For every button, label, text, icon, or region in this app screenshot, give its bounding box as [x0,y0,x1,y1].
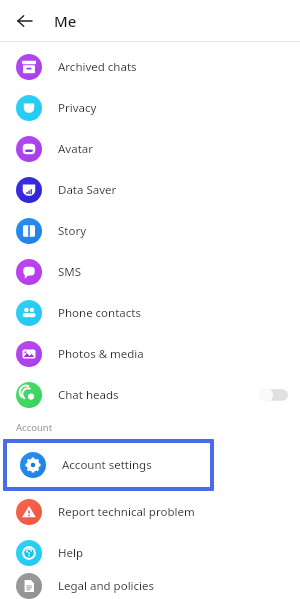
staticText: Help [58,545,84,561]
button[interactable]: Back [12,8,38,34]
button[interactable]: Legal and policies [0,573,300,599]
staticText: Chat heads [58,387,119,403]
staticText: Photos & media [58,346,144,362]
button[interactable]: SMS [0,251,300,292]
staticText: Account settings [62,457,152,473]
button[interactable]: Phone contacts [0,292,300,333]
staticText: Avatar [58,141,93,157]
button[interactable]: Toggle Chat heads [258,387,288,403]
button[interactable]: Avatar [0,128,300,169]
button[interactable]: Privacy [0,87,300,128]
button[interactable]: Story [0,210,300,251]
staticText: SMS [58,264,82,280]
staticText: Account [16,421,53,434]
button[interactable]: Account settings [7,443,210,487]
staticText: Data Saver [58,182,117,198]
button[interactable]: Data Saver [0,169,300,210]
staticText: Story [58,223,87,239]
staticText: Archived chats [58,59,137,75]
staticText: Phone contacts [58,305,141,321]
button[interactable]: Report technical problem [0,491,300,532]
button[interactable]: Help [0,532,300,573]
staticText: Report technical problem [58,504,195,520]
staticText: Privacy [58,100,97,116]
button[interactable]: Archived chats [0,46,300,87]
staticText: Legal and policies [58,578,155,594]
button[interactable]: Chat heads [0,374,300,415]
staticText: Me [54,11,77,31]
button[interactable]: Photos & media [0,333,300,374]
